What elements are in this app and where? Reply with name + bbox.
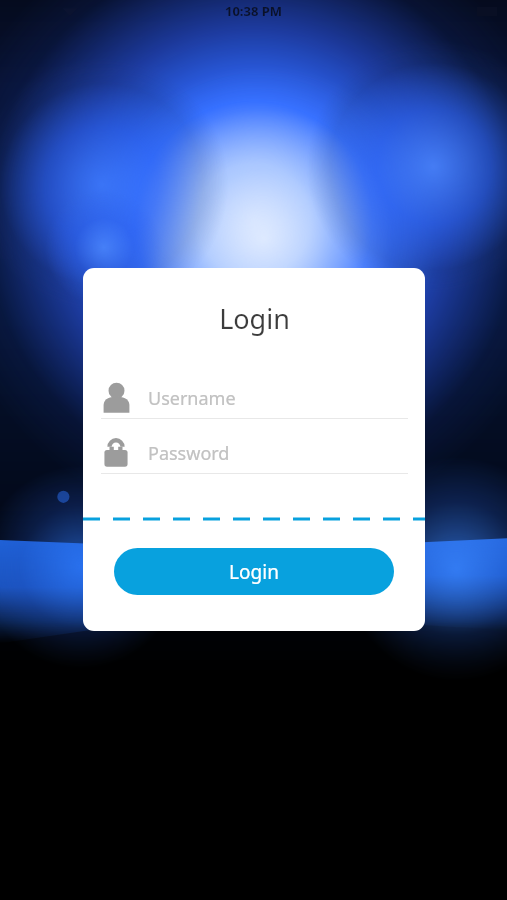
button[interactable]: Username xyxy=(101,380,408,419)
other: Username xyxy=(102,383,131,413)
staticText: 10:38 PM xyxy=(225,2,283,20)
other: Password xyxy=(103,438,129,468)
staticText: Username xyxy=(148,386,236,411)
staticText: Login xyxy=(219,300,290,337)
button[interactable]: Login xyxy=(114,548,394,595)
staticText: Login xyxy=(229,559,279,585)
staticText: Password xyxy=(148,441,230,466)
button[interactable]: Password xyxy=(101,435,408,474)
